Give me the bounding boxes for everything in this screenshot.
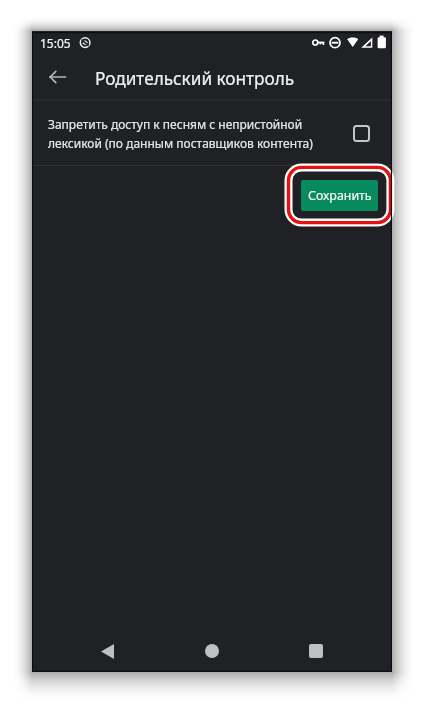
button[interactable]: Обзор приложений	[296, 631, 336, 671]
button[interactable]: Запретить доступ к песням с непристойной…	[32, 100, 392, 165]
staticText: Сохранить	[308, 187, 372, 204]
button[interactable]: Назад	[37, 57, 77, 97]
button[interactable]: Главный экран	[192, 631, 232, 671]
staticText: Родительский контроль	[95, 67, 295, 90]
button[interactable]: Назад	[87, 631, 127, 671]
button[interactable]: Флажок: запретить доступ	[346, 118, 376, 148]
staticText: 15:05	[40, 35, 71, 51]
staticText: Запретить доступ к песням с непристойной…	[48, 116, 328, 151]
button[interactable]: Сохранить	[301, 180, 378, 211]
